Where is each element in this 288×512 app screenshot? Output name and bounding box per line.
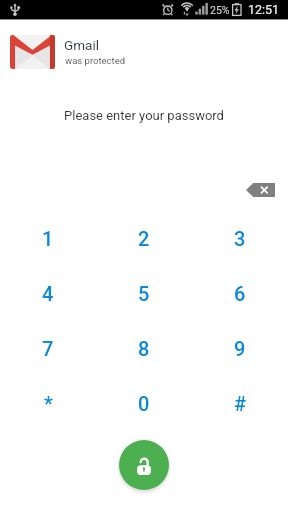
button[interactable]: 7 [0, 321, 96, 376]
button[interactable]: Delete [246, 183, 275, 197]
staticText: was protected [65, 55, 126, 66]
button[interactable]: 1 [0, 211, 96, 266]
staticText: 12:51 [248, 2, 280, 17]
staticText: 6 [234, 282, 246, 305]
button[interactable]: 9 [192, 321, 288, 376]
staticText: 8 [138, 337, 150, 360]
staticText: # [234, 392, 247, 415]
button[interactable]: 2 [96, 211, 192, 266]
button[interactable]: Unlock [119, 440, 169, 490]
staticText: 5 [138, 282, 150, 305]
button[interactable]: 4 [0, 266, 96, 321]
staticText: 9 [234, 337, 246, 360]
staticText: 4 [42, 282, 54, 305]
staticText: 0 [138, 392, 150, 415]
button[interactable]: 5 [96, 266, 192, 321]
staticText: 2 [138, 227, 150, 250]
staticText: 1 [42, 227, 54, 250]
staticText: * [44, 392, 53, 415]
staticText: 3 [234, 227, 246, 250]
button[interactable]: 8 [96, 321, 192, 376]
button[interactable]: * [0, 376, 96, 431]
staticText: Gmail [64, 37, 99, 53]
button[interactable]: 6 [192, 266, 288, 321]
staticText: Please enter your password [0, 108, 288, 123]
button[interactable]: # [192, 376, 288, 431]
staticText: 25% [210, 4, 230, 16]
button[interactable]: 0 [96, 376, 192, 431]
button[interactable]: 3 [192, 211, 288, 266]
staticText: 7 [42, 337, 54, 360]
